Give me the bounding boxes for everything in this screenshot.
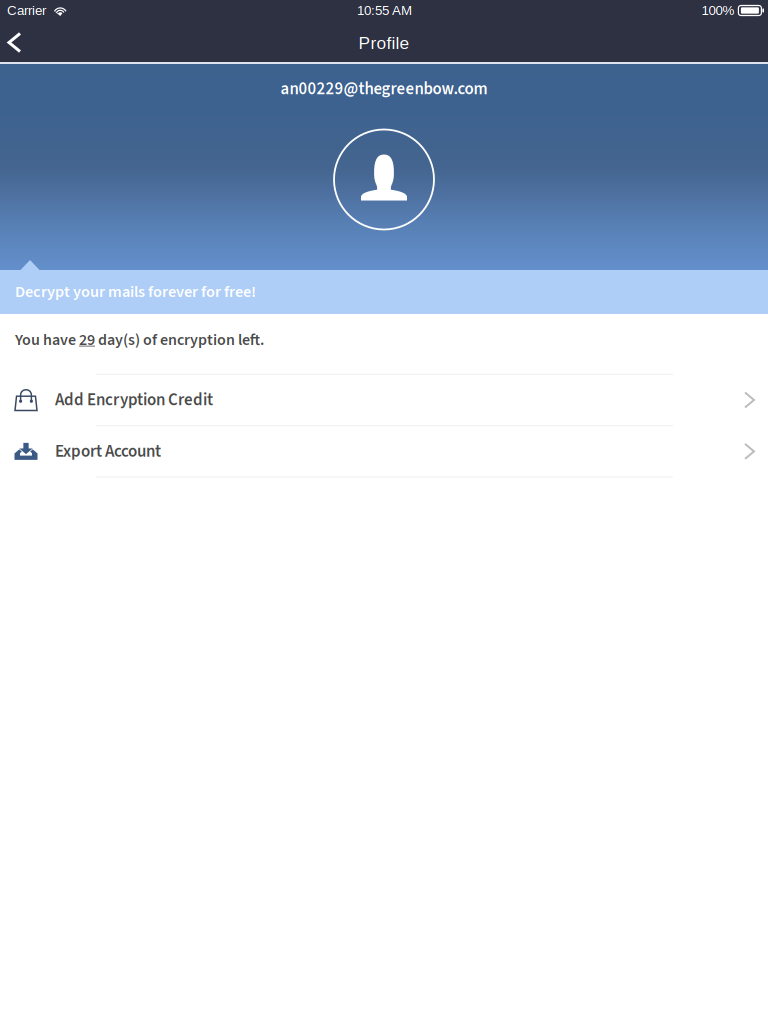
staticText: Profile bbox=[358, 33, 409, 53]
button[interactable]: Add Encryption Credit bbox=[0, 375, 768, 426]
staticText: Add Encryption Credit bbox=[55, 388, 213, 412]
staticText: an00229@thegreenbow.com bbox=[280, 77, 487, 101]
staticText: Decrypt your mails forever for free! bbox=[15, 280, 256, 304]
button[interactable]: Back bbox=[0, 22, 34, 61]
staticText: Export Account bbox=[55, 439, 161, 463]
staticText: 100% bbox=[701, 3, 734, 18]
button[interactable]: Export Account bbox=[0, 426, 768, 478]
staticText: 10:55 AM bbox=[357, 3, 412, 18]
staticText: You have 29 day(s) of encryption left. bbox=[15, 328, 264, 351]
staticText: Carrier bbox=[7, 3, 46, 18]
